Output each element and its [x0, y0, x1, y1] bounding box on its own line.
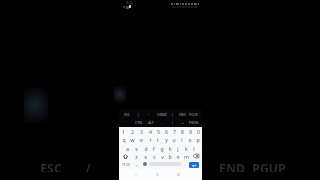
staticText: 4	[149, 128, 152, 135]
button[interactable]: a	[123, 144, 132, 152]
button[interactable]: 6	[162, 127, 170, 135]
staticText: ~	[148, 113, 150, 117]
button[interactable]: Recents	[174, 169, 182, 180]
staticText: v	[161, 153, 164, 160]
staticText: CTRL	[135, 121, 143, 125]
button[interactable]: n	[174, 152, 182, 160]
button[interactable]: j	[174, 144, 182, 152]
button[interactable]: Backspace	[190, 152, 202, 160]
staticText: s	[135, 145, 138, 152]
staticText: d	[144, 145, 148, 152]
button[interactable]: z	[132, 152, 141, 160]
staticText: o	[188, 136, 192, 143]
staticText: z	[135, 153, 138, 160]
staticText: x	[144, 153, 147, 160]
staticText: PGDN	[189, 121, 198, 125]
button[interactable]: Shift	[119, 152, 132, 160]
button[interactable]: 2	[128, 127, 137, 135]
button[interactable]: p	[194, 135, 202, 143]
staticText: 7	[173, 128, 176, 135]
button[interactable]: 8	[178, 127, 186, 135]
staticText: -	[161, 121, 162, 125]
button[interactable]: k	[182, 144, 190, 152]
staticText: 6	[165, 128, 168, 135]
button[interactable]: g	[158, 144, 166, 152]
button[interactable]: 3	[137, 127, 146, 135]
staticText: p	[196, 136, 200, 143]
staticText: ?123	[122, 162, 130, 167]
staticText: ,	[136, 161, 138, 168]
staticText: f	[153, 145, 155, 152]
button[interactable]: 1	[119, 127, 128, 135]
staticText: q	[122, 136, 126, 143]
button[interactable]: s	[132, 144, 141, 152]
staticText: ˄	[125, 121, 126, 125]
staticText: PGUP	[189, 113, 198, 117]
staticText: |	[171, 121, 173, 125]
button[interactable]: Enter	[189, 162, 199, 168]
button[interactable]: 9	[186, 127, 194, 135]
button[interactable]: u	[170, 135, 178, 143]
button[interactable]: .	[181, 160, 189, 168]
button[interactable]: x	[141, 152, 150, 160]
button[interactable]: i	[178, 135, 186, 143]
staticText: u	[172, 136, 176, 143]
staticText: 9	[189, 128, 192, 135]
staticText: 9:42	[126, 1, 133, 5]
staticText: c	[153, 153, 156, 160]
button[interactable]: b	[166, 152, 174, 160]
staticText: m	[184, 153, 189, 160]
staticText: 3	[140, 128, 143, 135]
button[interactable]: d	[141, 144, 150, 152]
staticText: ALT	[148, 121, 154, 125]
button[interactable]: e	[137, 135, 146, 143]
button[interactable]: 0	[194, 127, 202, 135]
button[interactable]: Switch language	[141, 160, 149, 168]
button[interactable]: h	[166, 144, 174, 152]
staticText: ESC	[40, 160, 62, 172]
staticText: r	[149, 136, 152, 143]
button[interactable]: f	[150, 144, 158, 152]
button[interactable]: m	[182, 152, 190, 160]
button[interactable]: o	[186, 135, 194, 143]
button[interactable]: ?123	[119, 160, 133, 168]
button[interactable]: 7	[170, 127, 178, 135]
button[interactable]: Home	[153, 169, 161, 180]
button[interactable]: Back	[131, 169, 139, 180]
staticText: /	[85, 160, 91, 172]
staticText: k	[185, 145, 188, 152]
staticText: n	[176, 153, 180, 160]
button[interactable]: q	[119, 135, 128, 143]
button[interactable]: t	[154, 135, 162, 143]
button[interactable]: y	[162, 135, 170, 143]
staticText: 2	[131, 128, 134, 135]
staticText: .	[184, 161, 186, 168]
button[interactable]: l	[190, 144, 198, 152]
staticText: END	[179, 113, 186, 117]
staticText: 8	[181, 128, 184, 135]
button[interactable]: r	[146, 135, 154, 143]
button[interactable]: 4	[146, 127, 154, 135]
staticText: 5	[157, 128, 160, 135]
staticText: w	[130, 136, 135, 143]
staticText: l	[193, 145, 195, 152]
staticText: ESC	[124, 113, 130, 117]
staticText: |	[137, 113, 139, 117]
staticText: t	[157, 136, 159, 143]
staticText: |	[171, 113, 173, 117]
staticText: →	[181, 121, 184, 125]
staticText: e	[140, 136, 143, 143]
staticText: g	[160, 145, 164, 152]
staticText: 0	[197, 128, 200, 135]
button[interactable]: w	[128, 135, 137, 143]
button[interactable]: v	[158, 152, 166, 160]
button[interactable]: c	[150, 152, 158, 160]
staticText: i	[181, 136, 183, 143]
staticText: 1	[122, 128, 125, 135]
staticText: b	[168, 153, 172, 160]
staticText: h	[168, 145, 172, 152]
button[interactable]: 5	[154, 127, 162, 135]
staticText: END	[219, 160, 245, 172]
button[interactable]: ,	[133, 160, 141, 168]
